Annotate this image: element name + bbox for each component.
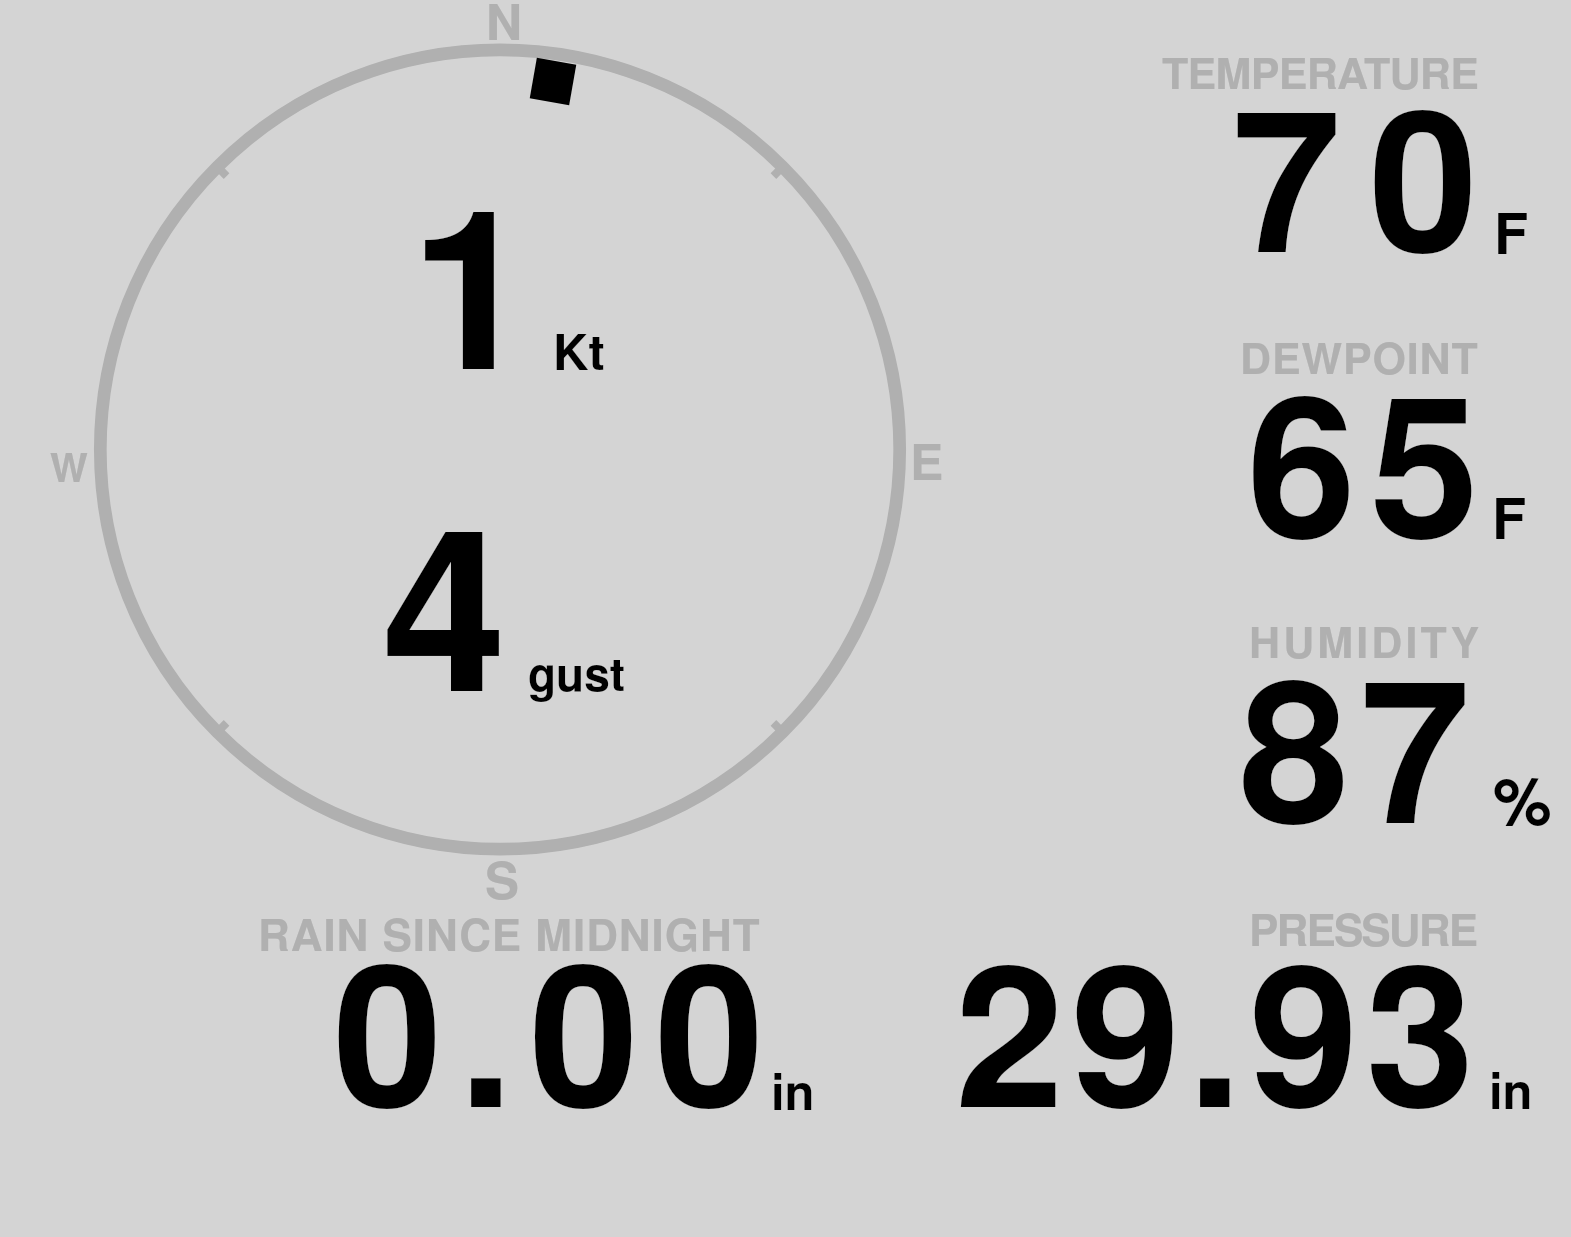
button[interactable]: Wind direction compass — [82, 31, 918, 868]
staticText: % — [1493, 751, 1552, 846]
staticText: 29.93 — [955, 886, 1482, 1167]
staticText: E — [910, 424, 944, 496]
staticText: Kt — [553, 315, 605, 385]
staticText: in — [1489, 1054, 1533, 1124]
button[interactable]: Temperature 70 degrees F — [1150, 50, 1571, 270]
staticText: DEWPOINT — [1240, 326, 1479, 388]
staticText: TEMPERATURE — [1162, 41, 1479, 103]
staticText: 0.00 — [333, 885, 781, 1167]
button[interactable]: Wind gust 4 knots — [330, 460, 660, 720]
staticText: F — [1494, 191, 1529, 271]
staticText: in — [771, 1055, 815, 1125]
staticText: PRESSURE — [1249, 896, 1477, 959]
button[interactable]: Wind speed 1 knot — [330, 140, 660, 420]
button[interactable]: Dewpoint 65 degrees F — [1150, 335, 1571, 555]
staticText: 1 — [410, 119, 534, 437]
button[interactable]: Pressure 29.93 inches — [900, 905, 1550, 1120]
staticText: N — [486, 0, 523, 56]
staticText: F — [1492, 476, 1527, 556]
staticText: 87 — [1239, 600, 1482, 884]
staticText: S — [485, 842, 520, 915]
staticText: W — [50, 437, 88, 494]
other: Wind direction indicator — [530, 58, 576, 105]
button[interactable]: Humidity 87 percent — [1150, 620, 1571, 840]
staticText: HUMIDITY — [1249, 610, 1483, 672]
staticText: RAIN SINCE MIDNIGHT — [258, 901, 761, 964]
staticText: 65 — [1247, 317, 1493, 598]
staticText: 70 — [1232, 31, 1506, 312]
button[interactable]: Rain since midnight 0.00 inches — [250, 905, 830, 1120]
staticText: gust — [528, 639, 626, 705]
staticText: 4 — [382, 439, 507, 760]
